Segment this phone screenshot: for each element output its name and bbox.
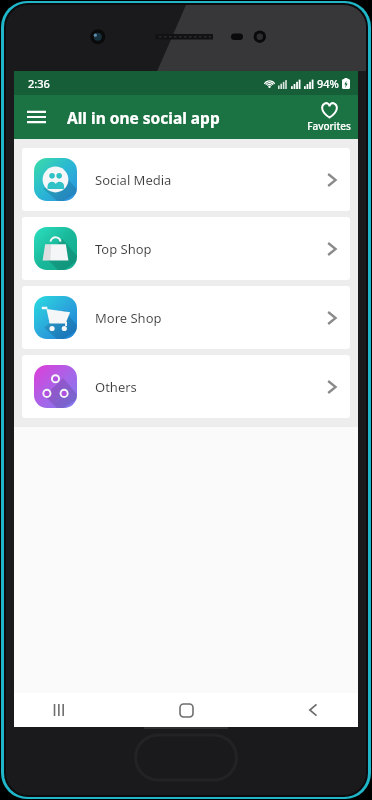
staticText: All in one social app [67,107,220,128]
staticText: Others [95,378,326,396]
button[interactable]: More Shop [22,286,350,349]
staticText: Favorites [307,119,351,133]
staticText: More Shop [95,309,326,327]
button[interactable]: Social Media [22,148,350,211]
button[interactable]: Top Shop [22,217,350,280]
button[interactable]: Recent apps [36,693,82,727]
staticText: Top Shop [95,240,326,258]
staticText: Social Media [95,171,326,189]
button[interactable]: Others [22,355,350,418]
button[interactable]: Home [163,693,209,727]
button[interactable]: Favorites [300,95,358,139]
button[interactable]: Back [290,693,336,727]
staticText: 94% [317,76,339,91]
staticText: 2:36 [28,76,50,91]
button[interactable]: Open navigation menu [14,95,58,139]
